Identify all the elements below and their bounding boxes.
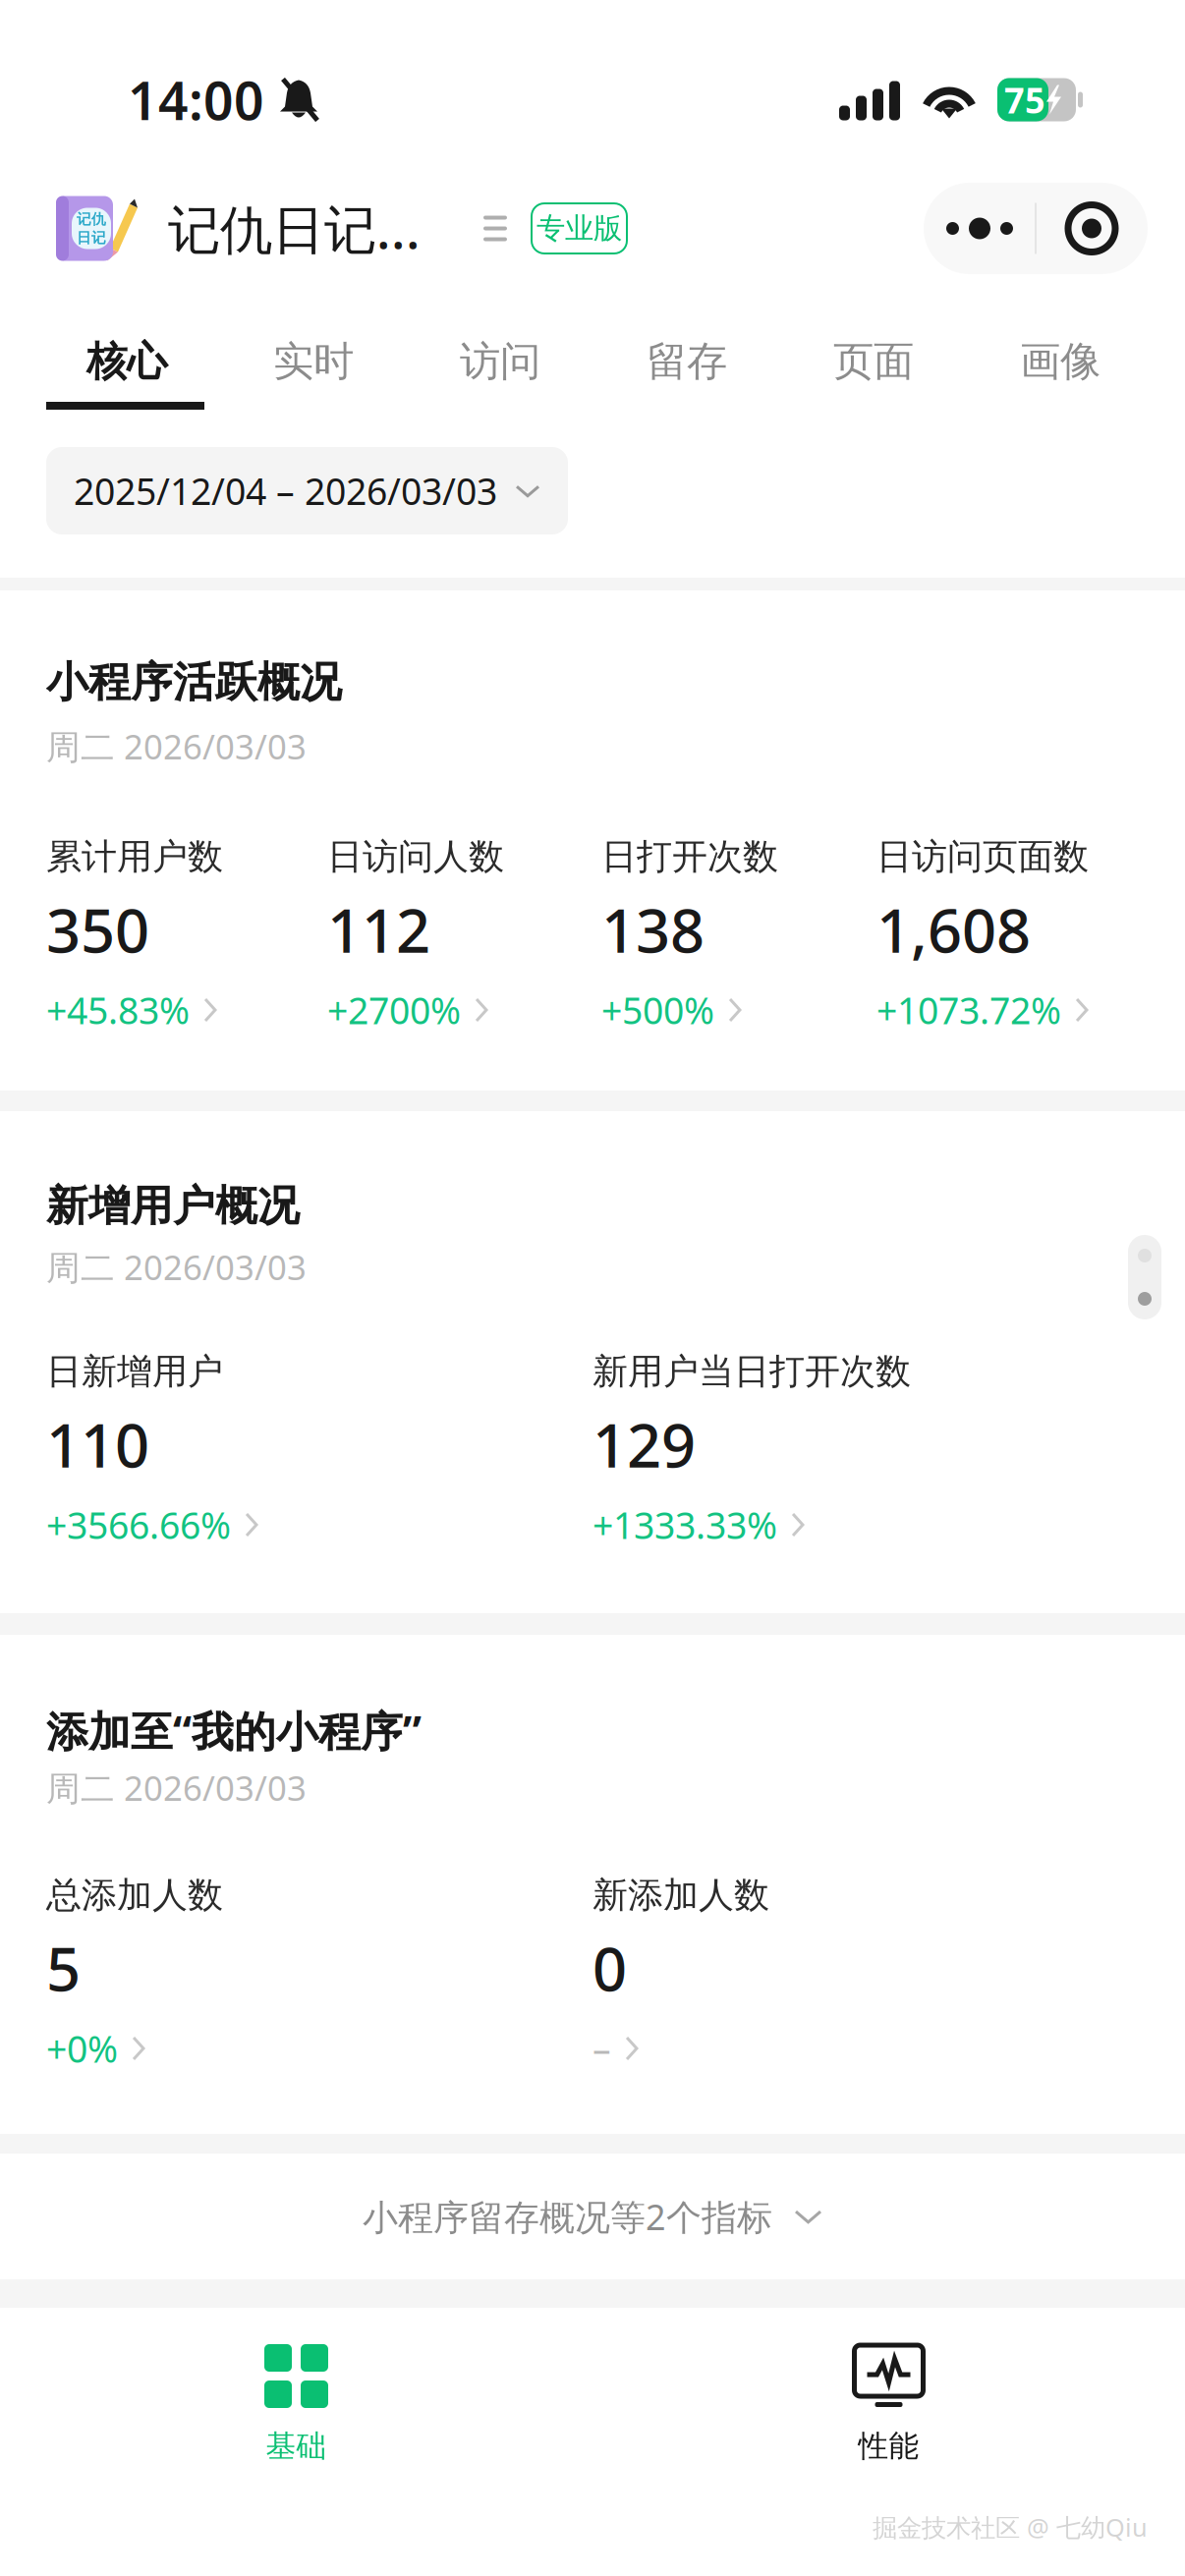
button[interactable]: +2700% <box>327 995 487 1025</box>
staticText: 日访问页面数 <box>876 835 1089 878</box>
staticText: 周二 2026/03/03 <box>46 724 307 769</box>
button[interactable]: 基础 <box>0 2308 592 2576</box>
staticText: +1333.33% <box>592 1500 777 1549</box>
button[interactable]: 实时 <box>220 338 407 385</box>
staticText: +0% <box>46 2024 118 2073</box>
staticText: 日新增用户 <box>46 1350 223 1393</box>
staticText: 基础 <box>266 2428 327 2465</box>
button[interactable]: 2025/12/04 – 2026/03/03 <box>46 447 568 534</box>
button[interactable]: 画像 <box>967 338 1154 385</box>
staticText: +2700% <box>327 986 461 1034</box>
staticText: 累计用户数 <box>46 835 223 878</box>
staticText: 记仇 <box>77 210 106 228</box>
staticText: – <box>592 2024 611 2073</box>
staticText: 138 <box>601 889 705 969</box>
staticText: 0 <box>592 1928 627 2008</box>
staticText: 2025/12/04 – 2026/03/03 <box>74 466 497 515</box>
button[interactable]: More <box>924 183 1036 274</box>
button[interactable]: 访问 <box>407 338 593 385</box>
staticText: 75 <box>1004 76 1045 123</box>
button[interactable]: 专业版 <box>532 203 627 253</box>
staticText: +1073.72% <box>876 986 1061 1034</box>
staticText: +3566.66% <box>46 1500 231 1549</box>
staticText: 掘金技术社区 @ 七幼Qiu <box>873 2511 1148 2544</box>
staticText: 总添加人数 <box>46 1873 223 1917</box>
button[interactable]: Close <box>1036 183 1148 274</box>
button[interactable]: 核心 <box>33 338 220 385</box>
button[interactable]: 性能 <box>592 2308 1185 2576</box>
button[interactable]: +500% <box>601 995 741 1025</box>
staticText: 画像 <box>1020 337 1100 386</box>
staticText: 日记 <box>77 229 106 247</box>
button[interactable]: 留存 <box>593 338 780 385</box>
button[interactable]: +1073.72% <box>876 995 1088 1025</box>
staticText: 小程序留存概况等2个指标 <box>363 2193 772 2240</box>
staticText: 小程序活跃概况 <box>46 657 342 708</box>
staticText: +500% <box>601 986 714 1034</box>
button[interactable]: +0% <box>46 2034 144 2063</box>
staticText: 记仇日记... <box>168 194 421 263</box>
staticText: 添加至“我的小程序” <box>46 1703 422 1758</box>
staticText: 专业版 <box>536 211 622 246</box>
staticText: 新用户当日打开次数 <box>592 1350 911 1393</box>
staticText: 日访问人数 <box>327 835 504 878</box>
staticText: 核心 <box>86 337 167 386</box>
staticText: 日打开次数 <box>601 835 778 878</box>
staticText: 留存 <box>647 337 727 386</box>
staticText: 112 <box>327 889 430 969</box>
staticText: 新增用户概况 <box>46 1180 300 1232</box>
button[interactable]: – <box>592 2034 638 2063</box>
staticText: 周二 2026/03/03 <box>46 1244 307 1289</box>
button[interactable]: +1333.33% <box>592 1510 804 1540</box>
staticText: 页面 <box>833 337 914 386</box>
staticText: 129 <box>592 1404 696 1484</box>
button[interactable]: 小程序留存概况等2个指标 <box>0 2154 1185 2279</box>
staticText: 14:00 <box>128 65 264 134</box>
staticText: 110 <box>46 1404 149 1484</box>
staticText: 5 <box>46 1928 81 2008</box>
staticText: 周二 2026/03/03 <box>46 1765 307 1810</box>
staticText: 350 <box>46 889 149 969</box>
button[interactable]: +45.83% <box>46 995 216 1025</box>
staticText: +45.83% <box>46 986 190 1034</box>
staticText: 1,608 <box>876 889 1031 969</box>
staticText: 新添加人数 <box>592 1873 769 1917</box>
button[interactable]: 页面 <box>780 338 967 385</box>
staticText: 访问 <box>460 337 540 386</box>
staticText: 性能 <box>858 2428 919 2465</box>
button[interactable]: +3566.66% <box>46 1510 257 1540</box>
staticText: 实时 <box>273 337 354 386</box>
